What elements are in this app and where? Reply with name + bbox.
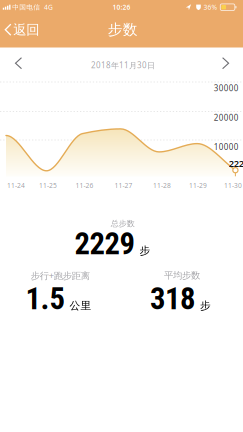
staticText: 11-29 xyxy=(189,181,207,190)
staticText: 318 xyxy=(150,281,195,317)
staticText: 36% xyxy=(203,3,217,12)
staticText: 步 xyxy=(200,299,211,312)
staticText: 11-25 xyxy=(39,181,57,190)
staticText: 步数 xyxy=(108,20,138,38)
staticText: 1.5 xyxy=(25,281,64,317)
staticText: 20000 xyxy=(214,112,239,123)
staticText: 中国电信 xyxy=(12,3,40,11)
staticText: 30000 xyxy=(214,83,239,93)
staticText: 4G xyxy=(44,3,53,12)
button[interactable]: 返回 xyxy=(5,21,39,38)
staticText: 10000 xyxy=(214,142,239,152)
staticText: 11-28 xyxy=(153,181,171,190)
staticText: 步行+跑步距离 xyxy=(31,269,90,282)
button[interactable]: 前一天 xyxy=(9,52,27,75)
staticText: 10:26 xyxy=(112,3,130,12)
button[interactable]: 后一天 xyxy=(217,52,235,75)
staticText: 2229 xyxy=(74,226,134,262)
staticText: 2018年11月30日 xyxy=(91,60,155,70)
staticText: 平均步数 xyxy=(164,270,200,281)
staticText: 步 xyxy=(139,244,150,257)
staticText: 11-24 xyxy=(7,181,25,190)
staticText: 11-26 xyxy=(75,181,93,190)
staticText: 总步数 xyxy=(111,219,135,228)
staticText: 2229 xyxy=(229,157,243,170)
staticText: 11-30 xyxy=(224,181,242,190)
staticText: 返回 xyxy=(13,21,39,38)
staticText: 11-27 xyxy=(115,181,133,190)
staticText: 公里 xyxy=(69,299,91,312)
